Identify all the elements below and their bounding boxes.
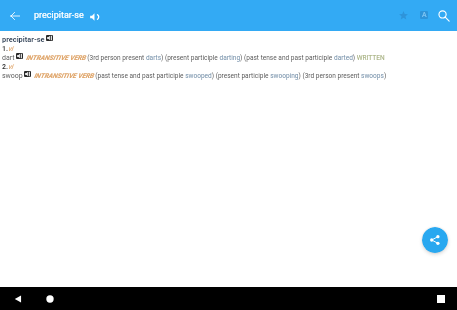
button[interactable]: Add to favourites bbox=[394, 6, 412, 24]
staticText: precipitar-se bbox=[34, 10, 84, 21]
button[interactable]: Recent apps bbox=[432, 290, 449, 307]
staticText: 1. bbox=[2, 45, 9, 53]
button[interactable]: Navigate up bbox=[4, 5, 26, 27]
staticText: vi bbox=[8, 63, 13, 71]
staticText: 2. bbox=[2, 63, 9, 71]
staticText: INTRANSITIVE VERB (3rd person present da… bbox=[26, 54, 385, 62]
staticText: swoop bbox=[2, 72, 23, 80]
staticText: A bbox=[422, 11, 427, 19]
button[interactable]: Change text size bbox=[415, 6, 433, 24]
button[interactable]: Search bbox=[435, 7, 453, 25]
button[interactable]: Back bbox=[9, 290, 26, 307]
staticText: vi bbox=[8, 45, 13, 53]
button[interactable]: Home bbox=[41, 290, 58, 307]
staticText: dart bbox=[2, 54, 15, 62]
button[interactable]: Share bbox=[422, 227, 448, 253]
staticText: INTRANSITIVE VERB (past tense and past p… bbox=[34, 72, 387, 80]
button[interactable]: Pronounce bbox=[86, 9, 101, 24]
staticText: precipitar-se bbox=[2, 35, 45, 44]
